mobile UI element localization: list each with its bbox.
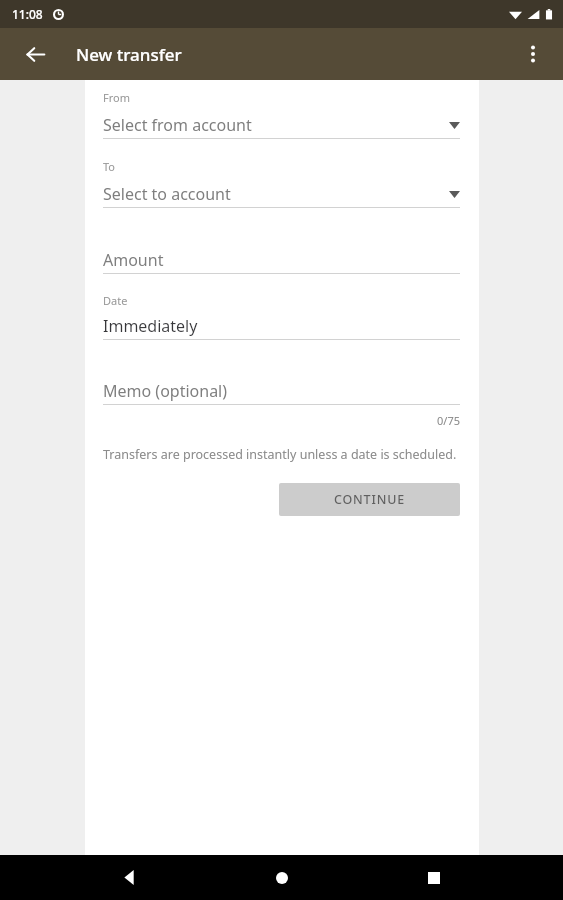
button[interactable]: Select to account bbox=[103, 181, 460, 207]
staticText: Select from account bbox=[103, 114, 449, 136]
staticText: To bbox=[103, 159, 116, 174]
staticText: 0/75 bbox=[103, 413, 460, 428]
button[interactable]: Home bbox=[258, 855, 306, 900]
staticText: Select to account bbox=[103, 183, 449, 205]
staticText: CONTINUE bbox=[334, 491, 405, 508]
staticText: 11:08 bbox=[12, 6, 43, 22]
staticText: Memo (optional) bbox=[103, 380, 228, 402]
button[interactable]: Memo (optional) bbox=[103, 378, 460, 404]
staticText: Amount bbox=[103, 249, 164, 271]
button[interactable]: More options bbox=[512, 33, 554, 75]
button[interactable]: Back bbox=[105, 855, 153, 900]
staticText: New transfer bbox=[76, 43, 182, 66]
staticText: Immediately bbox=[103, 315, 198, 337]
staticText: Transfers are processed instantly unless… bbox=[103, 446, 457, 463]
button[interactable]: Immediately bbox=[103, 313, 460, 339]
button[interactable]: Amount bbox=[103, 247, 460, 273]
button[interactable]: Back bbox=[14, 33, 56, 75]
button[interactable]: Recent apps bbox=[410, 855, 458, 900]
button[interactable]: Select from account bbox=[103, 112, 460, 138]
button[interactable]: CONTINUE bbox=[279, 483, 460, 516]
staticText: From bbox=[103, 90, 130, 105]
staticText: Date bbox=[103, 293, 128, 308]
